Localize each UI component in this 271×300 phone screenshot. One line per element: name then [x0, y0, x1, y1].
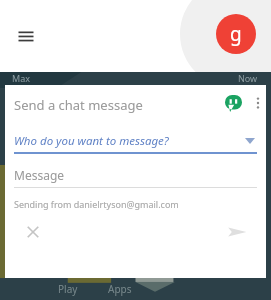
button[interactable]: Send — [224, 219, 250, 245]
staticText: Apps — [108, 282, 132, 296]
staticText: Who do you want to message? — [14, 133, 169, 149]
staticText: Play — [58, 282, 78, 296]
staticText: Send a chat message — [14, 96, 143, 114]
staticText: Now — [238, 72, 258, 84]
staticText: Max — [12, 72, 30, 84]
button[interactable]: Hangouts — [225, 95, 242, 112]
button[interactable]: Message — [5, 158, 266, 192]
button[interactable]: More options — [247, 92, 269, 114]
button[interactable]: Who do you want to message? — [5, 120, 266, 158]
staticText: Message — [14, 167, 65, 183]
button[interactable]: Apps — [96, 280, 144, 298]
button[interactable]: Menu — [14, 26, 38, 50]
button[interactable]: Google search — [216, 14, 256, 54]
staticText: Sending from danielrtyson@gmail.com — [14, 198, 179, 210]
staticText: g — [230, 21, 242, 47]
button[interactable]: Play — [46, 280, 90, 298]
button[interactable]: Dismiss — [21, 220, 45, 244]
